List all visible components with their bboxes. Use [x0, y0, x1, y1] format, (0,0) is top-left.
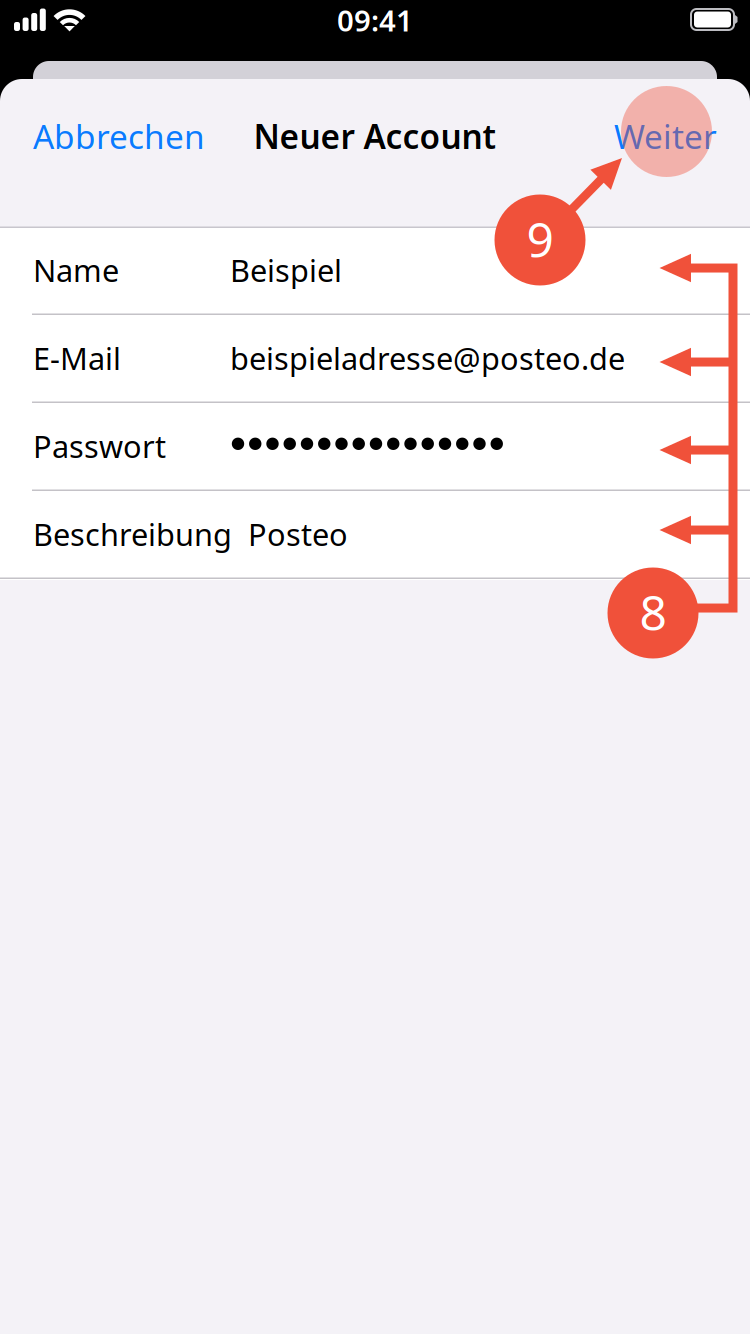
staticText: 09:41 [337, 0, 413, 39]
button[interactable]: Beschreibung [0, 490, 750, 578]
staticText: Name [33, 250, 119, 290]
staticText: Passwort [33, 426, 166, 466]
staticText: beispieladresse@posteo.de [230, 338, 625, 378]
staticText: Weiter [614, 114, 717, 158]
button[interactable]: Passwort [0, 402, 750, 490]
staticText: 8 [639, 580, 666, 644]
staticText: Beschreibung [33, 514, 232, 554]
button[interactable]: Weiter [548, 92, 750, 180]
button[interactable]: Abbrechen [0, 92, 240, 180]
staticText: Beispiel [230, 250, 342, 290]
button[interactable]: E-Mail [0, 314, 750, 402]
staticText: 9 [526, 207, 553, 271]
staticText: Posteo [248, 514, 348, 554]
button[interactable]: Name [0, 226, 750, 314]
staticText: E-Mail [33, 338, 121, 378]
staticText: Neuer Account [253, 114, 496, 158]
staticText: Abbrechen [33, 114, 205, 158]
